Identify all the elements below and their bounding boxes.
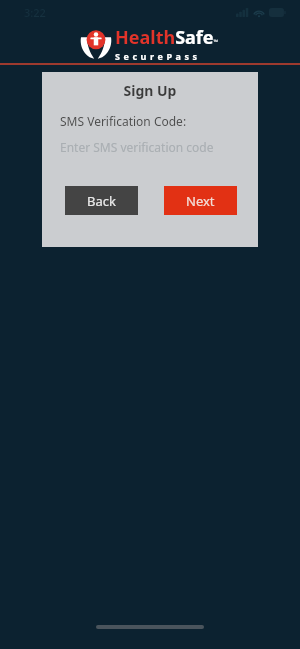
staticText: Next [186, 192, 215, 210]
staticText: 3:22 [24, 5, 46, 20]
button[interactable]: Next [164, 186, 237, 215]
staticText: Enter SMS verification code [60, 139, 214, 155]
staticText: HealthSafe™ [115, 25, 219, 50]
staticText: S e c u r e P a s s [115, 50, 198, 62]
staticText: Sign Up [42, 81, 258, 100]
button[interactable]: Back [65, 186, 138, 215]
staticText: SMS Verification Code: [60, 113, 187, 129]
button[interactable]: Enter SMS verification code [60, 138, 240, 156]
staticText: Back [87, 192, 116, 210]
